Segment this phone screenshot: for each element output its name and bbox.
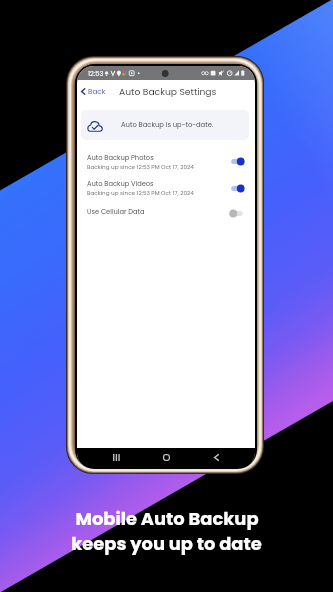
button[interactable]: Home (158, 449, 175, 466)
button[interactable]: Back (79, 84, 108, 98)
staticText: Auto Backup Photos (87, 153, 154, 162)
button[interactable]: Toggle on (230, 183, 245, 194)
staticText: Mobile Auto Backup (75, 506, 259, 531)
button[interactable]: Auto Backup is up-to-date. (81, 110, 249, 140)
button[interactable]: Toggle on (230, 156, 245, 167)
button[interactable]: Auto Backup Photos (87, 153, 237, 171)
staticText: keeps you up to date (71, 531, 262, 556)
staticText: Auto Backup is up-to-date. (121, 120, 214, 130)
staticText: 12:53 (88, 69, 104, 78)
staticText: Use Cellular Data (87, 207, 145, 216)
button[interactable]: Auto Backup Videos (87, 179, 237, 197)
staticText: Auto Backup Videos (87, 179, 154, 188)
staticText: Backing up since 12:53 PM Oct 17, 2024 (87, 189, 194, 197)
staticText: Back (88, 86, 106, 96)
button[interactable]: Toggle off (230, 208, 245, 219)
staticText: Auto Backup Settings (119, 85, 217, 98)
staticText: Backing up since 12:53 PM Oct 17, 2024 (87, 163, 194, 171)
button[interactable]: Back (208, 449, 225, 466)
button[interactable]: Use Cellular Data (87, 207, 237, 216)
button[interactable]: Recent apps (108, 449, 125, 466)
